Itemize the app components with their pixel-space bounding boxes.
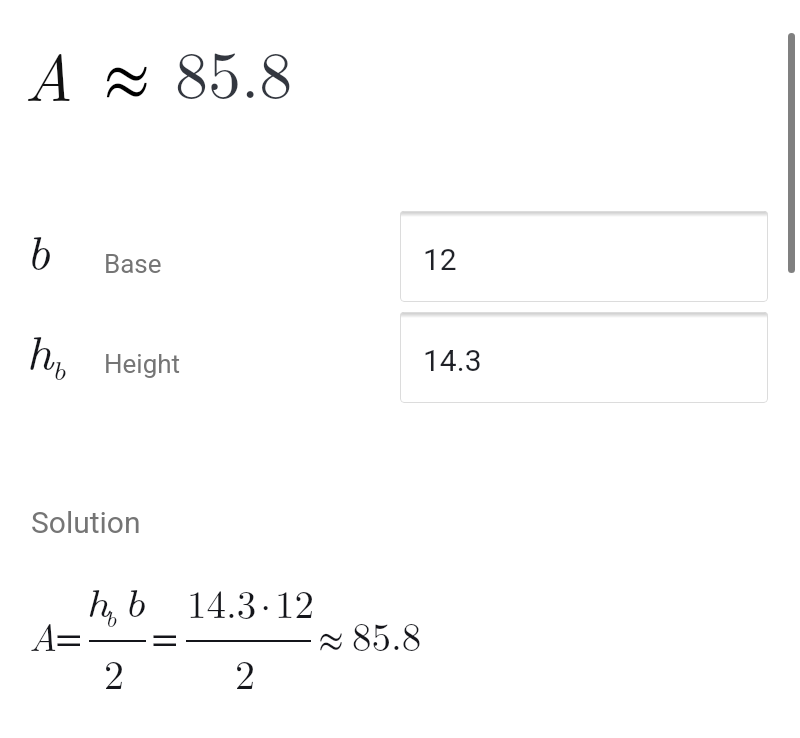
staticText: 14.3 xyxy=(423,343,482,378)
button[interactable]: Height xyxy=(104,349,181,379)
staticText: A xyxy=(29,608,58,662)
staticText: 85.8 xyxy=(175,45,293,111)
button[interactable]: 14.3 xyxy=(400,312,768,403)
staticText: 85.8 xyxy=(352,619,422,658)
staticText: = xyxy=(151,622,179,660)
staticText: = xyxy=(55,622,83,660)
staticText: A xyxy=(24,27,74,120)
staticText: b xyxy=(105,602,117,633)
button[interactable]: Base xyxy=(104,249,162,279)
staticText: h xyxy=(26,317,54,382)
staticText: ≈ xyxy=(103,49,151,115)
staticText: b xyxy=(124,572,146,629)
button[interactable]: Scroll position xyxy=(788,33,795,273)
staticText: 2 xyxy=(104,657,124,697)
staticText: b xyxy=(52,351,67,388)
staticText: Solution xyxy=(31,505,141,540)
staticText: b xyxy=(26,217,52,282)
staticText: 2 xyxy=(235,657,255,697)
staticText: 14.3 · 12 xyxy=(187,587,314,626)
staticText: ≈ xyxy=(318,624,344,660)
staticText: 12 xyxy=(423,242,457,277)
button[interactable]: 12 xyxy=(400,211,768,302)
staticText: h xyxy=(86,572,111,629)
